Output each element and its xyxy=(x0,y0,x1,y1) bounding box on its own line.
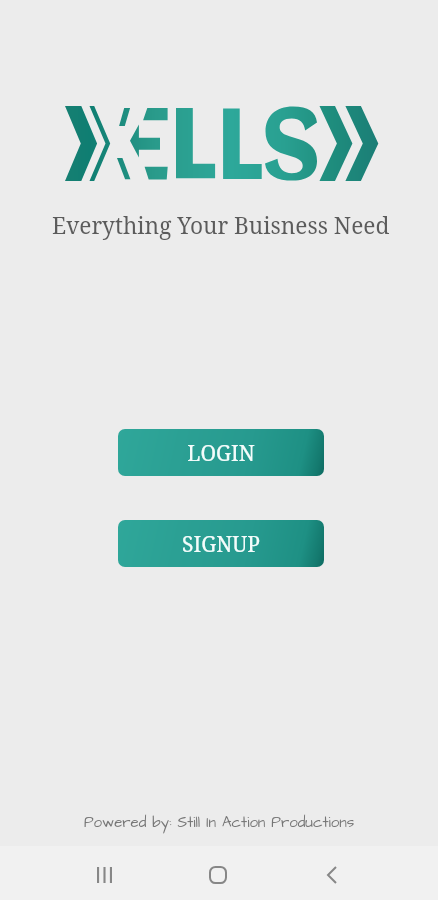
button[interactable]: Recent apps xyxy=(60,848,148,900)
button[interactable]: Home xyxy=(174,848,262,900)
button[interactable]: LOGIN xyxy=(118,429,324,476)
staticText: Powered by: Still In Action Productions xyxy=(84,812,355,833)
button[interactable]: SIGNUP xyxy=(118,520,324,567)
staticText: LOGIN xyxy=(187,439,255,468)
staticText: Everything Your Buisness Need xyxy=(52,210,390,241)
staticText: SIGNUP xyxy=(182,530,260,559)
button[interactable]: Back xyxy=(288,848,376,900)
